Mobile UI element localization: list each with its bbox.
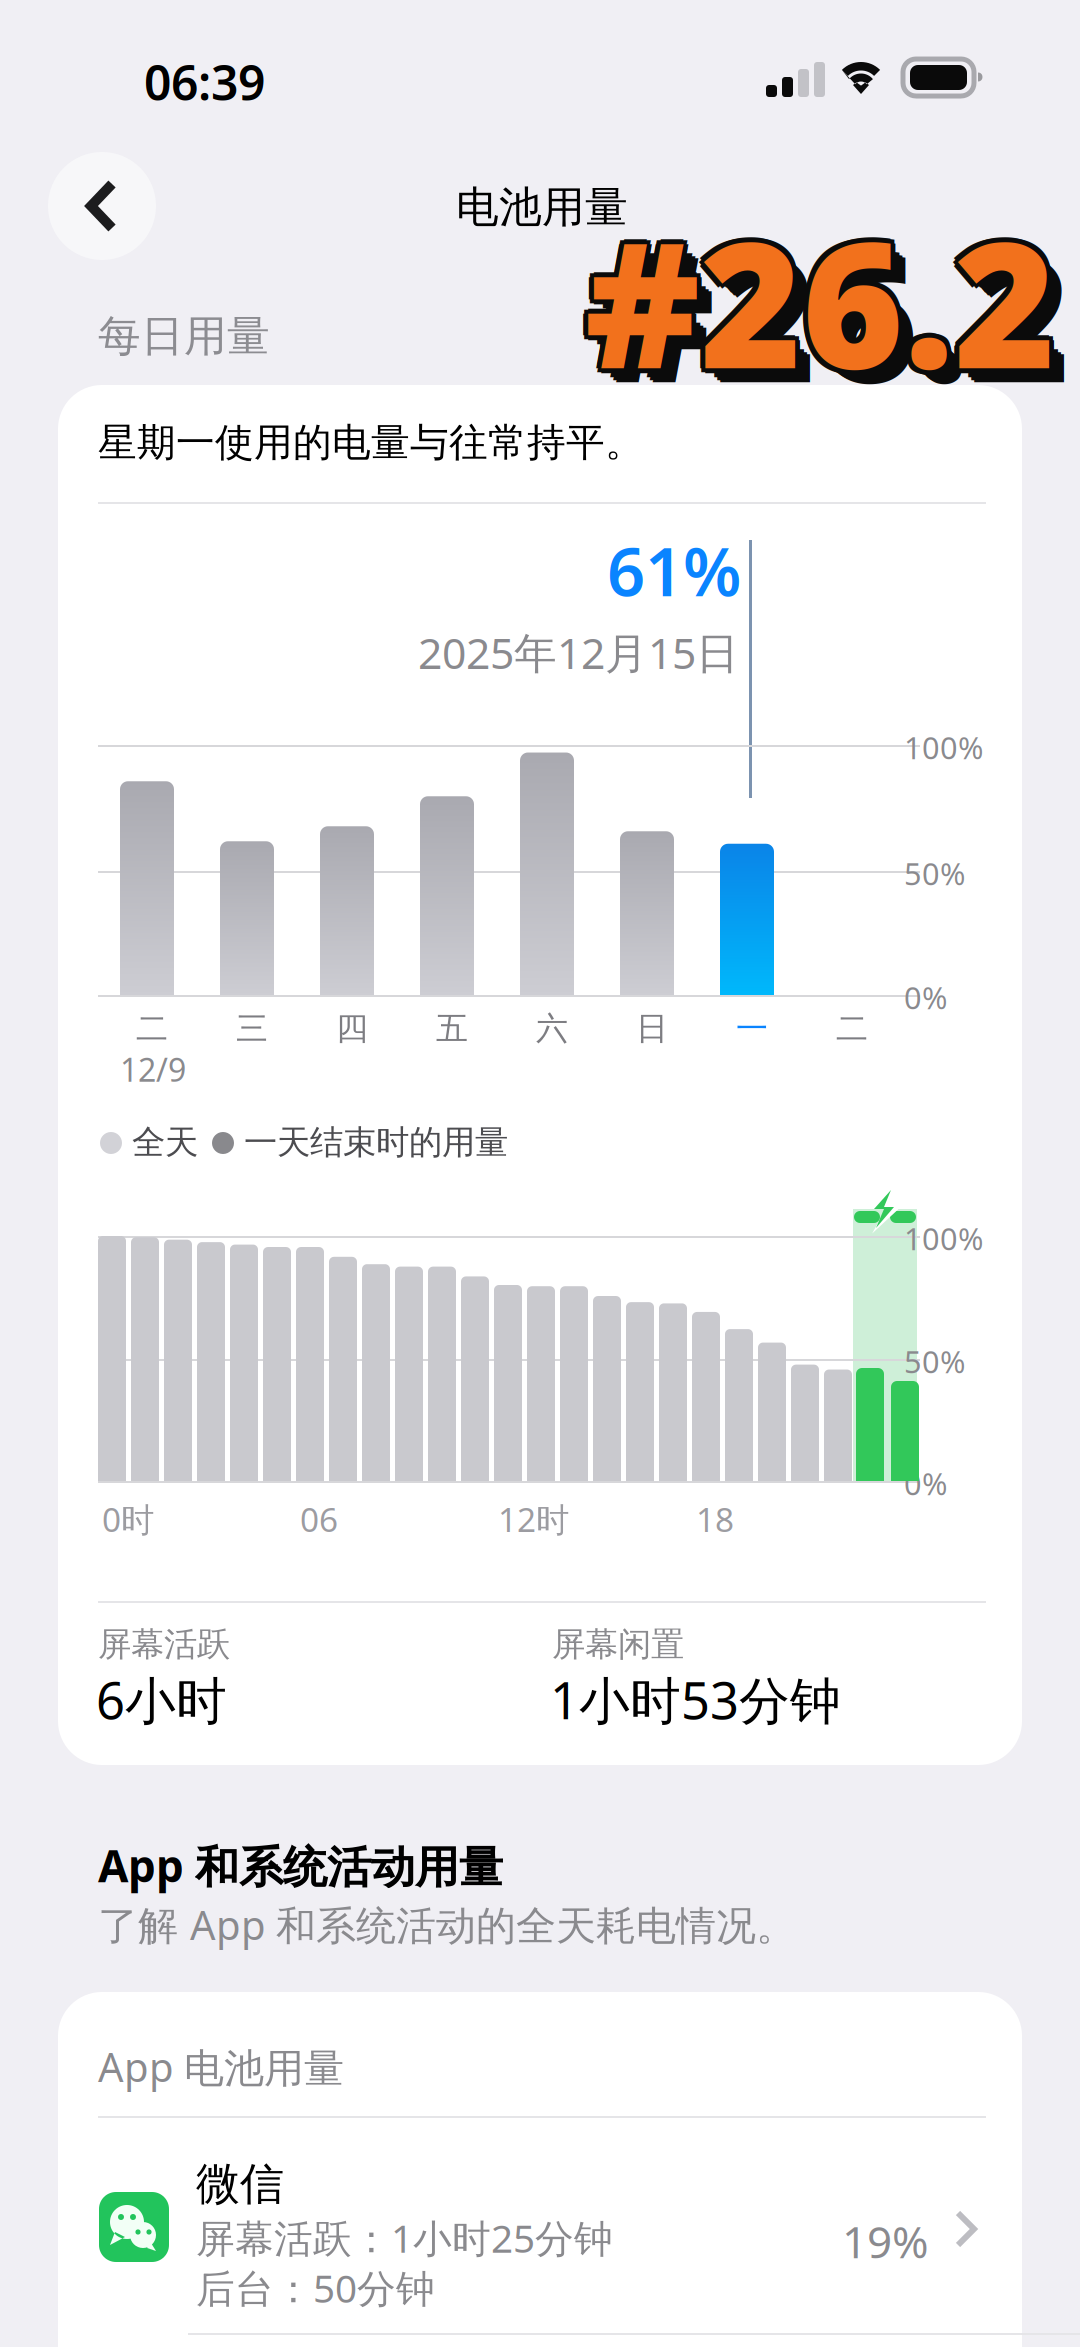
staticText: 三 (236, 1009, 268, 1048)
staticText: #26.2 (585, 186, 1056, 416)
staticText: 100% (904, 727, 983, 768)
staticText: #26.2 (585, 191, 1056, 421)
staticText: App 电池用量 (98, 2040, 344, 2093)
staticText: 星期一使用的电量与往常持平。 (98, 419, 644, 466)
staticText: 屏幕活跃 (98, 1624, 230, 1665)
staticText: #26.2 (581, 182, 1052, 412)
staticText: 06:39 (144, 50, 265, 114)
staticText: #26.2 (589, 190, 1060, 420)
staticText: 0时 (102, 1497, 154, 1541)
staticText: 12/9 (120, 1048, 186, 1090)
staticText: #26.2 (594, 195, 1065, 425)
staticText: 19% (842, 2212, 929, 2270)
staticText: 06 (300, 1497, 338, 1541)
staticText: 一天结束时的用量 (244, 1122, 508, 1163)
staticText: #26.2 (585, 181, 1056, 411)
staticText: #26.2 (589, 182, 1060, 412)
staticText: 一 (736, 1009, 768, 1048)
staticText: 100% (904, 1218, 983, 1259)
staticText: 日 (636, 1009, 668, 1048)
staticText: 了解 App 和系统活动的全天耗电情况。 (98, 1898, 796, 1951)
staticText: 12时 (498, 1497, 569, 1541)
staticText: 二 (836, 1009, 868, 1048)
staticText: 电池用量 (456, 181, 628, 233)
staticText: 61% (607, 526, 741, 614)
staticText: 18 (696, 1497, 734, 1541)
staticText: 50% (904, 853, 965, 894)
staticText: #26.2 (597, 198, 1068, 428)
staticText: #26.2 (600, 200, 1071, 430)
staticText: 屏幕活跃：1小时25分钟 (196, 2212, 613, 2263)
staticText: 0% (904, 977, 947, 1018)
staticText: 四 (336, 1009, 368, 1048)
button[interactable]: 微信 (58, 2140, 1022, 2340)
staticText: 屏幕闲置 (552, 1624, 684, 1665)
staticText: 微信 (196, 2157, 284, 2211)
staticText: 五 (436, 1009, 468, 1048)
staticText: 2025年12月15日 (418, 624, 739, 681)
staticText: #26.2 (580, 186, 1051, 416)
staticText: 1小时53分钟 (550, 1666, 841, 1733)
staticText: 全天 (132, 1122, 198, 1163)
staticText: 50% (904, 1341, 965, 1382)
staticText: 六 (536, 1009, 568, 1048)
staticText: #26.2 (581, 190, 1052, 420)
staticText: 每日用量 (98, 310, 270, 362)
staticText: 二 (136, 1009, 168, 1048)
staticText: #26.2 (590, 186, 1061, 416)
staticText: 后台：50分钟 (196, 2262, 435, 2313)
button[interactable]: Back (48, 152, 156, 260)
staticText: 6小时 (96, 1666, 227, 1733)
staticText: 0% (904, 1463, 947, 1504)
staticText: App 和系统活动用量 (98, 1836, 503, 1895)
